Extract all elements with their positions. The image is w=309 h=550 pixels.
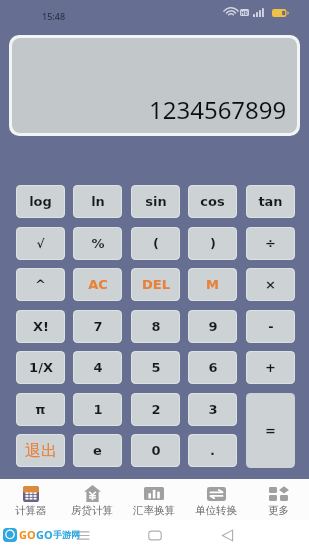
button[interactable]: sin [131,185,180,218]
button[interactable]: 5 [131,351,180,384]
button[interactable]: log [16,185,65,218]
staticText: M [206,277,219,292]
staticText: 1/X [29,360,53,375]
staticText: 2 [151,402,161,417]
staticText: sin [145,194,167,209]
button[interactable]: 房贷计算 [61,479,123,520]
button[interactable]: ) [188,227,237,260]
staticText: 3 [208,402,218,417]
button[interactable]: ^ [16,268,65,301]
staticText: DEL [142,277,170,292]
button[interactable]: 6 [188,351,237,384]
button[interactable]: 2 [131,393,180,426]
staticText: 4 [93,360,103,375]
button[interactable]: 0 [131,434,180,467]
button[interactable]: M [188,268,237,301]
button[interactable]: . [188,434,237,467]
staticText: 手游网 [53,529,80,540]
button[interactable]: AC [73,268,122,301]
button[interactable]: 退出 [16,434,65,467]
staticText: 汇率换算 [133,504,175,517]
staticText: log [29,194,52,209]
button[interactable]: 计算器 [0,479,61,520]
button[interactable]: ÷ [246,227,295,260]
button[interactable]: 更多 [247,479,309,520]
staticText: X! [33,319,49,334]
staticText: ÷ [265,236,276,251]
button[interactable]: √ [16,227,65,260]
button[interactable]: 3 [188,393,237,426]
staticText: ) [210,236,216,251]
button[interactable]: tan [246,185,295,218]
staticText: × [265,277,276,292]
staticText: 退出 [25,441,57,461]
staticText: 9 [208,319,218,334]
staticText: 1 [93,402,103,417]
staticText: AC [88,277,108,292]
staticText: - [268,319,274,334]
staticText: cos [200,194,225,209]
button[interactable]: DEL [131,268,180,301]
staticText: 更多 [268,504,289,517]
button[interactable]: 9 [188,310,237,343]
button[interactable]: e [73,434,122,467]
staticText: 5 [151,360,161,375]
staticText: HD [241,10,248,16]
staticText: GO [36,527,53,542]
staticText: 8 [151,319,161,334]
staticText: ln [91,194,105,209]
staticText: % [91,236,105,251]
staticText: GO [19,527,36,542]
staticText: 房贷计算 [71,504,113,517]
staticText: . [210,443,215,458]
staticText: ^ [35,277,46,292]
staticText: 1234567899 [149,93,287,126]
button[interactable]: 8 [131,310,180,343]
button[interactable]: ( [131,227,180,260]
staticText: π [35,402,46,417]
staticText: 0 [151,443,161,458]
staticText: 7 [93,319,103,334]
staticText: e [93,443,102,458]
staticText: tan [258,194,283,209]
button[interactable]: 汇率换算 [123,479,185,520]
button[interactable]: X! [16,310,65,343]
staticText: 15:48 [42,10,66,22]
button[interactable]: × [246,268,295,301]
button[interactable]: π [16,393,65,426]
staticText: √ [36,237,45,251]
button[interactable]: + [246,351,295,384]
staticText: 计算器 [15,504,47,517]
staticText: ( [153,236,159,251]
staticText: = [265,423,276,438]
button[interactable]: 单位转换 [185,479,247,520]
button[interactable]: 4 [73,351,122,384]
button[interactable]: cos [188,185,237,218]
button[interactable]: 7 [73,310,122,343]
button[interactable]: 1 [73,393,122,426]
staticText: 单位转换 [195,504,237,517]
button[interactable]: - [246,310,295,343]
button[interactable]: % [73,227,122,260]
button[interactable]: = [246,393,295,468]
staticText: 6 [208,360,218,375]
staticText: + [265,360,276,375]
button[interactable]: 1/X [16,351,65,384]
button[interactable]: ln [73,185,122,218]
